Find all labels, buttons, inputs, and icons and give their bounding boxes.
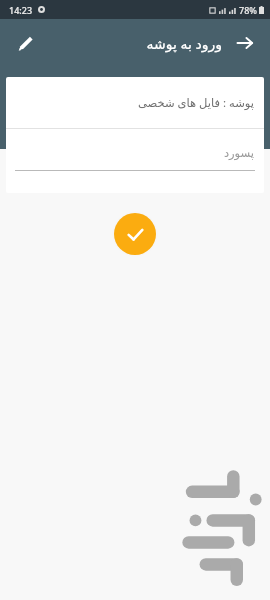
staticText: پوشه : فایل های شخصی <box>137 95 254 111</box>
staticText: پسورد <box>223 146 254 159</box>
button[interactable]: Edit <box>8 26 42 60</box>
button[interactable]: Next <box>228 26 262 60</box>
button[interactable]: پسورد <box>6 129 264 179</box>
staticText: 14:23 <box>9 4 33 16</box>
staticText: ورود به پوشه <box>146 34 222 53</box>
button[interactable]: Confirm <box>114 213 156 255</box>
button[interactable]: پوشه : فایل های شخصی <box>6 77 264 129</box>
staticText: 78% <box>239 4 257 16</box>
